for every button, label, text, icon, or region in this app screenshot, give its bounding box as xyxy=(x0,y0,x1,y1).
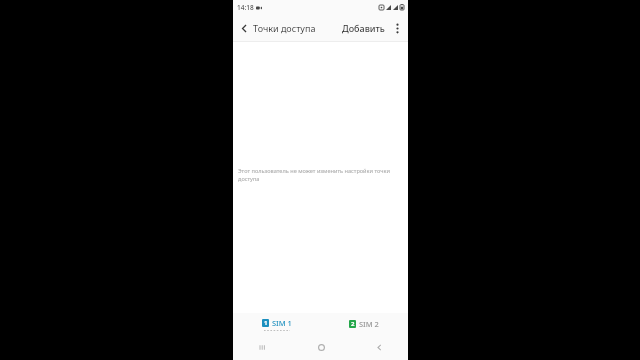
button[interactable]: 2 xyxy=(320,313,408,335)
button[interactable]: Добавить xyxy=(340,22,387,34)
button[interactable]: Назад xyxy=(350,335,408,360)
staticText: 2 xyxy=(351,320,355,328)
button[interactable]: Главный экран xyxy=(292,335,350,360)
button[interactable]: Назад xyxy=(236,20,252,36)
staticText: 14:18 xyxy=(237,3,254,12)
button[interactable]: Ещё xyxy=(389,20,405,36)
staticText: SIM 2 xyxy=(359,319,379,329)
staticText: Этот пользователь не может изменить наст… xyxy=(238,167,396,183)
button[interactable]: Недавние приложения xyxy=(233,335,292,360)
staticText: 1 xyxy=(264,319,268,327)
button[interactable]: Точки доступа xyxy=(253,22,316,34)
button[interactable]: 1 xyxy=(233,313,320,335)
staticText: SIM 1 xyxy=(272,318,292,328)
